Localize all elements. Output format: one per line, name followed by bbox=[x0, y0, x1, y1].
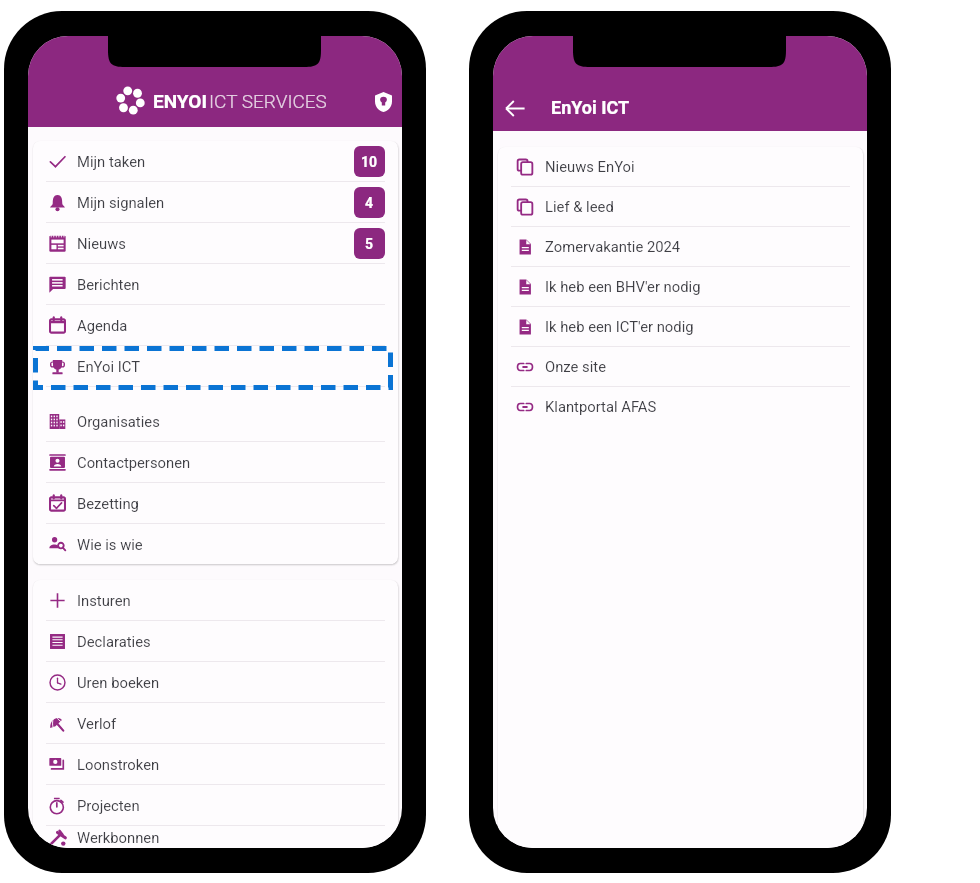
staticText: Insturen bbox=[77, 592, 131, 609]
staticText: EnYoi ICT bbox=[551, 97, 630, 118]
button[interactable]: Declaraties bbox=[33, 621, 398, 661]
staticText: Wie is wie bbox=[77, 536, 143, 553]
button[interactable]: Ik heb een BHV'er nodig bbox=[498, 267, 863, 306]
staticText: Ik heb een ICT'er nodig bbox=[545, 318, 694, 335]
button[interactable]: Uren boeken bbox=[33, 662, 398, 702]
staticText: 4 bbox=[365, 195, 374, 211]
button[interactable]: Wie is wie bbox=[33, 524, 398, 564]
staticText: Agenda bbox=[77, 317, 128, 334]
button[interactable]: Werkbonnen bbox=[33, 826, 398, 848]
button[interactable]: Agenda bbox=[33, 305, 398, 345]
staticText: Zomervakantie 2024 bbox=[545, 238, 681, 255]
button[interactable]: Contactpersonen bbox=[33, 442, 398, 482]
button[interactable]: Klantportal AFAS bbox=[498, 387, 863, 426]
staticText: Uren boeken bbox=[77, 674, 160, 691]
button[interactable]: Onze site bbox=[498, 347, 863, 386]
staticText: Organisaties bbox=[77, 413, 160, 430]
staticText: Nieuws EnYoi bbox=[545, 158, 635, 175]
staticText: Onze site bbox=[545, 358, 607, 375]
button[interactable]: Nieuws bbox=[33, 223, 398, 263]
staticText: Declaraties bbox=[77, 633, 151, 650]
staticText: Nieuws bbox=[77, 235, 126, 252]
staticText: ICT SERVICES bbox=[209, 90, 327, 112]
staticText: Mijn taken bbox=[77, 153, 146, 170]
staticText: EnYoi ICT bbox=[77, 358, 140, 375]
button[interactable]: Zomervakantie 2024 bbox=[498, 227, 863, 266]
button[interactable]: Nieuws EnYoi bbox=[498, 147, 863, 186]
staticText: Loonstroken bbox=[77, 756, 160, 773]
staticText: Mijn signalen bbox=[77, 194, 165, 211]
button[interactable]: Organisaties bbox=[33, 401, 398, 441]
button[interactable]: Loonstroken bbox=[33, 744, 398, 784]
staticText: Contactpersonen bbox=[77, 454, 191, 471]
staticText: Berichten bbox=[77, 276, 140, 293]
button[interactable]: Projecten bbox=[33, 785, 398, 825]
button[interactable]: Verlof bbox=[33, 703, 398, 743]
button[interactable]: Lief & leed bbox=[498, 187, 863, 226]
staticText: Lief & leed bbox=[545, 198, 614, 215]
button[interactable]: Ik heb een ICT'er nodig bbox=[498, 307, 863, 346]
button[interactable]: Mijn signalen bbox=[33, 182, 398, 222]
button[interactable]: Beveiliging bbox=[364, 83, 402, 121]
staticText: Bezetting bbox=[77, 495, 139, 512]
button[interactable]: Mijn taken bbox=[33, 141, 398, 181]
staticText: 10 bbox=[361, 154, 378, 170]
button[interactable]: Terug bbox=[497, 90, 533, 126]
staticText: Ik heb een BHV'er nodig bbox=[545, 278, 701, 295]
button[interactable]: Bezetting bbox=[33, 483, 398, 523]
button[interactable]: Berichten bbox=[33, 264, 398, 304]
button[interactable]: Insturen bbox=[33, 580, 398, 620]
staticText: ENYOI bbox=[153, 90, 207, 112]
staticText: 5 bbox=[365, 236, 374, 252]
staticText: Werkbonnen bbox=[77, 829, 160, 846]
button[interactable]: EnYoi ICT bbox=[33, 346, 398, 386]
staticText: Klantportal AFAS bbox=[545, 398, 657, 415]
staticText: Verlof bbox=[77, 715, 117, 732]
staticText: Projecten bbox=[77, 797, 140, 814]
